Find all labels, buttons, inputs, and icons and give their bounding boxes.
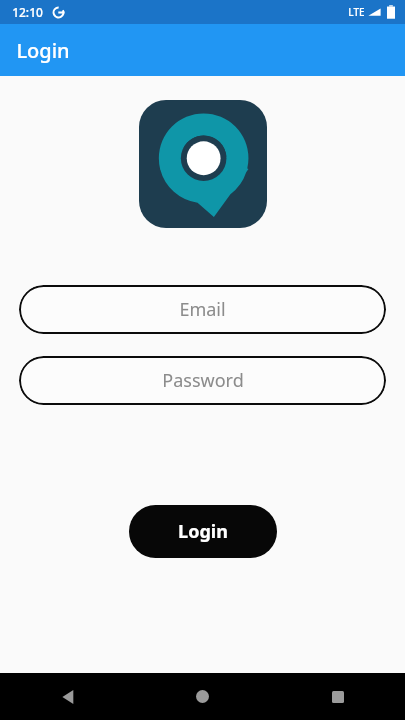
button[interactable]: Back [0,673,135,720]
button[interactable]: Password [19,356,386,405]
button[interactable]: Login [129,505,277,558]
staticText: Email [179,297,226,322]
staticText: Login [16,37,70,64]
staticText: Login [178,519,228,544]
button[interactable]: Home [135,673,270,720]
staticText: 12:10 [12,4,43,20]
staticText: Password [162,368,244,393]
button[interactable]: Email [19,285,386,334]
staticText: LTE [348,5,365,19]
button[interactable]: Recent apps [270,673,405,720]
